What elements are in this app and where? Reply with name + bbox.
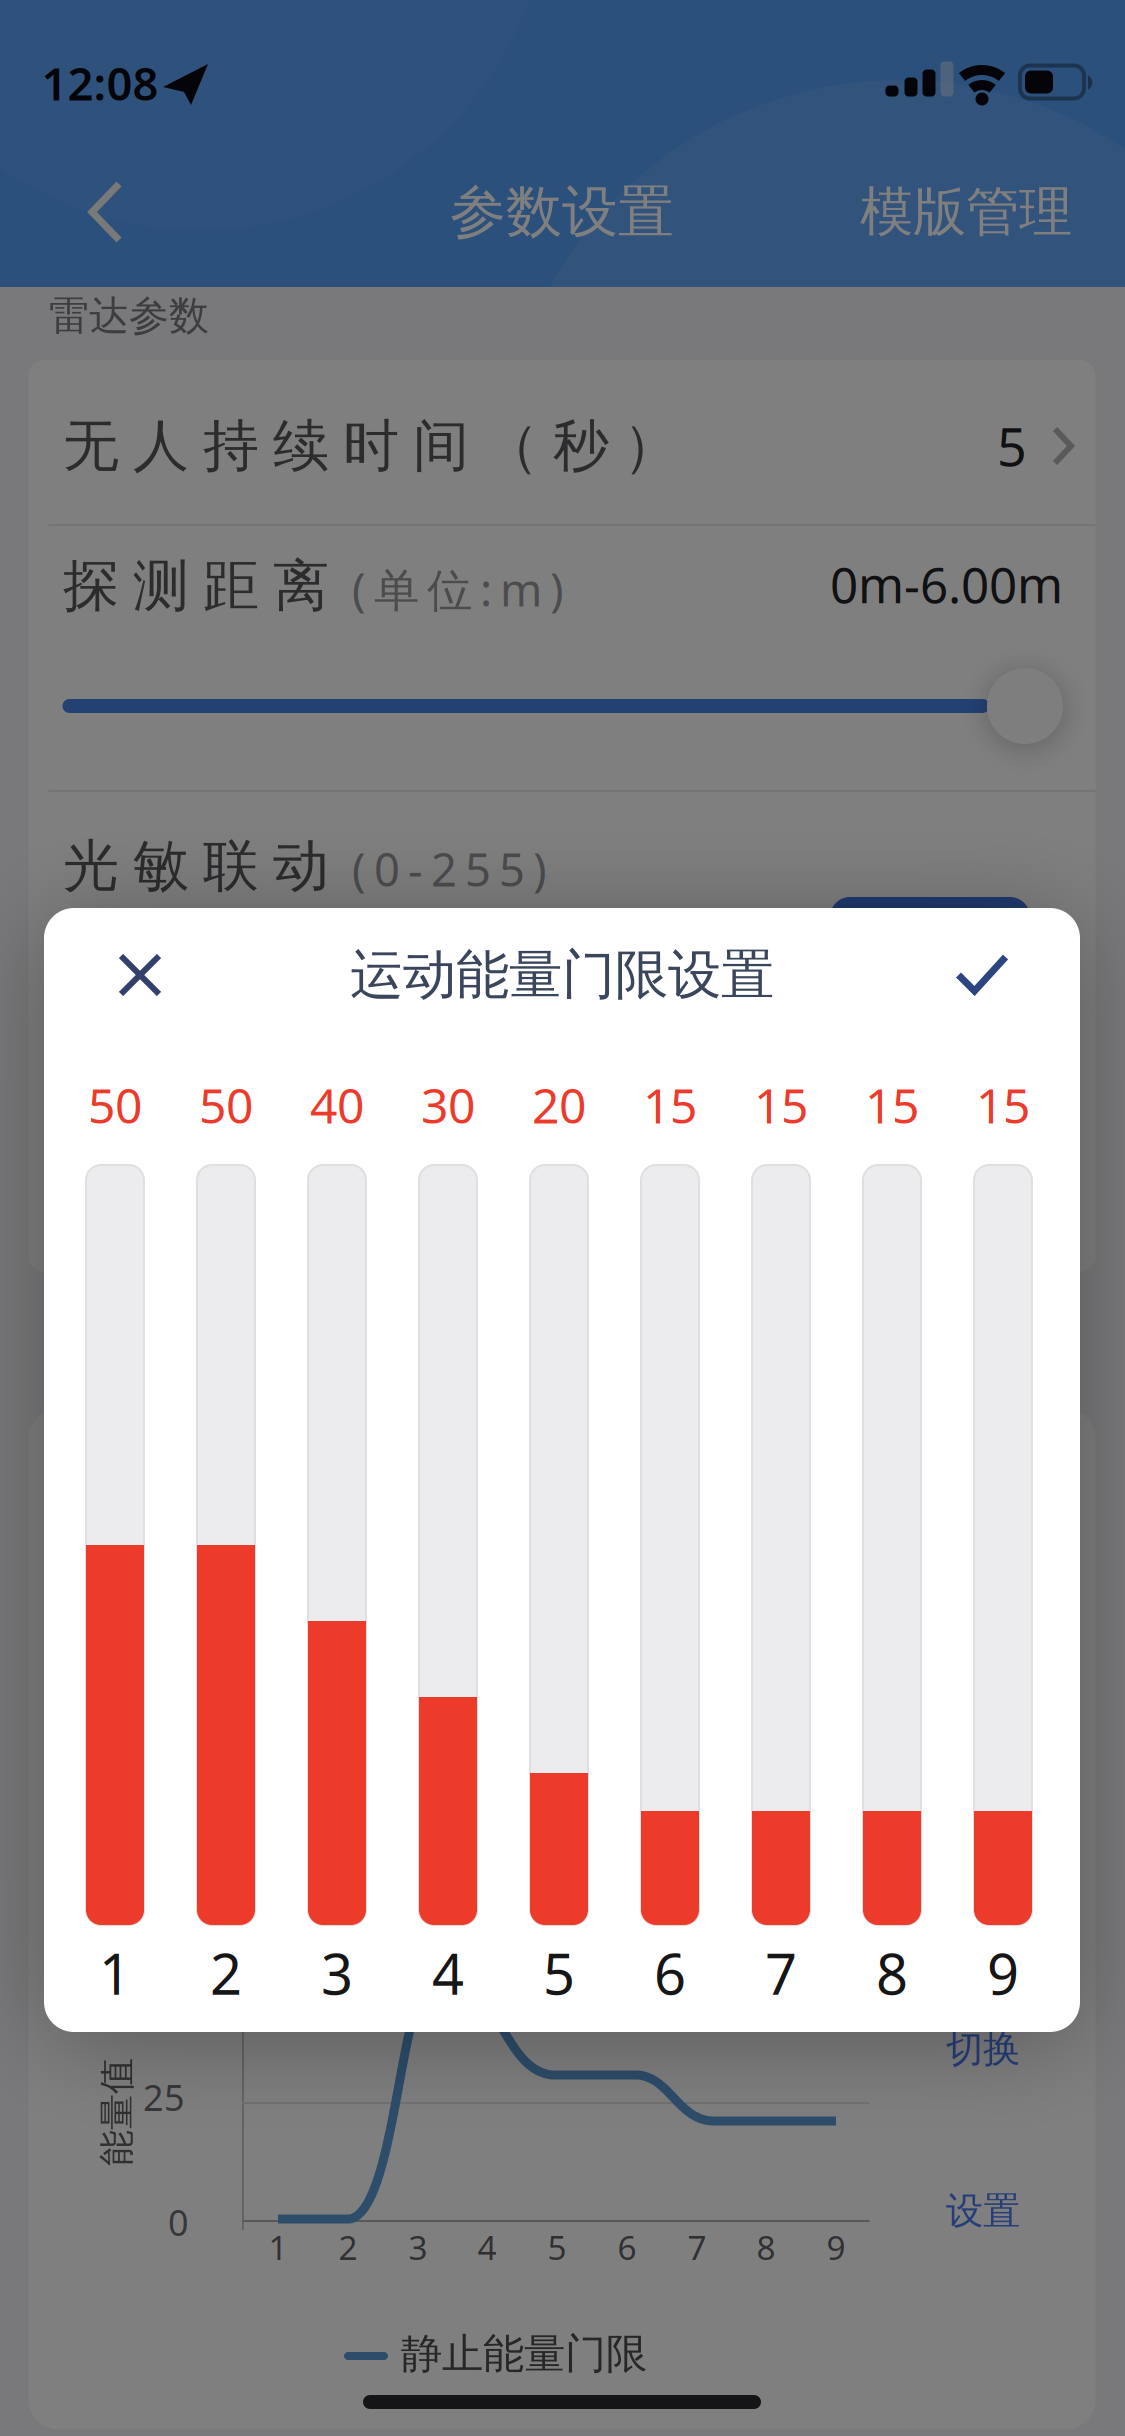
button[interactable]: 返回	[61, 167, 151, 257]
button[interactable]: 模版管理	[860, 179, 1072, 245]
staticText: 8	[876, 1936, 908, 2010]
staticText: 静止能量门限	[401, 2329, 647, 2379]
staticText: 50	[199, 1073, 253, 1137]
staticText: 无人持续时间（秒）	[63, 412, 679, 480]
staticText: 5	[547, 2225, 566, 2269]
staticText: 20	[532, 1073, 586, 1137]
staticText: 切换	[946, 2026, 1020, 2072]
staticText: 光敏联动	[63, 832, 329, 900]
staticText: 15	[754, 1073, 808, 1137]
button[interactable]: 确定	[955, 954, 1008, 994]
staticText: 模版管理	[860, 179, 1072, 245]
staticText: 6	[617, 2225, 636, 2269]
staticText: 参数设置	[450, 178, 674, 246]
staticText: 2	[338, 2225, 357, 2269]
staticText: 3	[408, 2225, 427, 2269]
staticText: 5	[543, 1936, 575, 2010]
staticText: 15	[865, 1073, 919, 1137]
staticText: 25	[143, 2073, 185, 2121]
staticText: 30	[421, 1073, 475, 1137]
button[interactable]: 切换	[946, 2026, 1020, 2072]
staticText: 40	[310, 1073, 364, 1137]
staticText: (0-255)	[352, 839, 547, 899]
staticText: 能量值	[63, 2090, 171, 2134]
staticText: 雷达参数	[49, 291, 209, 340]
staticText: 5	[997, 411, 1027, 481]
button[interactable]: 关闭	[118, 953, 162, 997]
staticText: 12:08	[41, 53, 158, 113]
staticText: 15	[976, 1073, 1030, 1137]
staticText: 4	[432, 1936, 464, 2010]
staticText: 8	[756, 2225, 775, 2269]
staticText: 0m-6.00m	[830, 551, 1063, 617]
button[interactable]: 设置	[946, 2188, 1020, 2234]
staticText: 50	[88, 1073, 142, 1137]
staticText: 3	[321, 1936, 353, 2010]
staticText: 6	[654, 1936, 686, 2010]
staticText: 9	[987, 1936, 1019, 2010]
staticText: 设置	[946, 2188, 1020, 2234]
staticText: 探测距离	[63, 552, 329, 620]
staticText: 1	[268, 2225, 287, 2269]
staticText: 4	[477, 2225, 496, 2269]
staticText: 运动能量门限设置	[350, 942, 774, 1008]
staticText: 0	[168, 2198, 189, 2246]
staticText: (单位:m)	[352, 559, 564, 619]
staticText: 15	[643, 1073, 697, 1137]
staticText: 9	[826, 2225, 845, 2269]
staticText: 7	[765, 1936, 797, 2010]
staticText: 7	[687, 2225, 706, 2269]
staticText: 1	[99, 1936, 131, 2010]
staticText: 2	[210, 1936, 242, 2010]
button[interactable]: 无人持续时间	[28, 360, 1095, 523]
button[interactable]: 设置	[830, 897, 1030, 957]
